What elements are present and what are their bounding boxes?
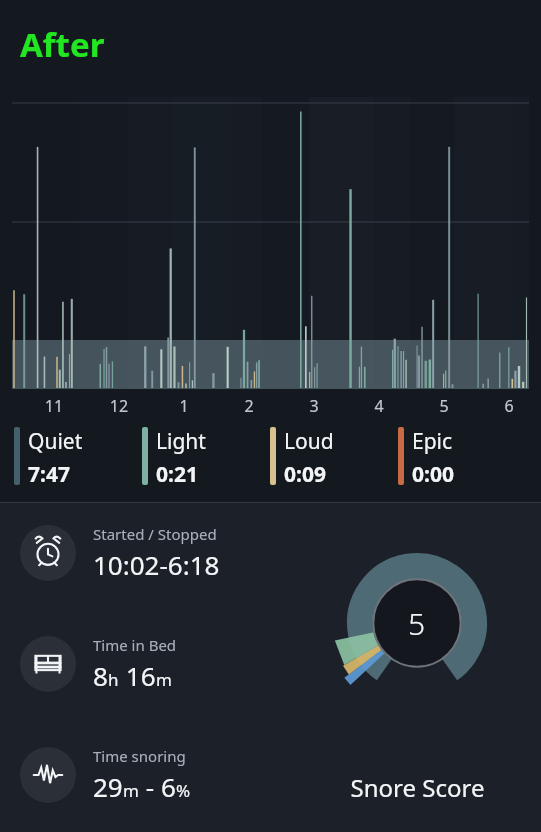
staticText: Time snoring xyxy=(93,746,186,766)
button[interactable]: Loud xyxy=(270,427,398,489)
staticText: 2 xyxy=(239,395,259,417)
staticText: m xyxy=(123,779,139,802)
staticText: Light xyxy=(156,427,206,456)
staticText: m xyxy=(156,668,172,691)
staticText: 5 xyxy=(434,395,454,417)
staticText: After xyxy=(20,22,105,67)
staticText: 0:09 xyxy=(284,460,326,489)
staticText: 3 xyxy=(304,395,324,417)
staticText: Time in Bed xyxy=(93,635,177,655)
staticText: 12 xyxy=(109,395,129,417)
staticText: Epic xyxy=(412,427,453,456)
staticText: Started / Stopped xyxy=(93,524,217,544)
staticText: 16 xyxy=(119,658,156,693)
button[interactable]: Quiet xyxy=(14,427,142,489)
button[interactable]: Light xyxy=(142,427,270,489)
staticText: - 6 xyxy=(139,769,176,804)
button[interactable]: Bed xyxy=(0,635,541,693)
staticText: 29 xyxy=(93,769,123,804)
staticText: 0:00 xyxy=(412,460,454,489)
staticText: 7:47 xyxy=(28,460,70,489)
other: Alarm xyxy=(20,525,76,581)
staticText: Loud xyxy=(284,427,334,456)
staticText: h xyxy=(108,668,119,691)
staticText: 6 xyxy=(499,395,519,417)
button[interactable]: Epic xyxy=(398,427,518,489)
staticText: 10:02-6:18 xyxy=(93,547,220,582)
staticText: Quiet xyxy=(28,427,83,456)
staticText: 5 xyxy=(408,603,426,644)
button[interactable]: Alarm xyxy=(0,524,541,582)
button[interactable]: Snore Score 5 xyxy=(347,553,487,693)
staticText: 4 xyxy=(369,395,389,417)
staticText: 11 xyxy=(44,395,64,417)
staticText: Snore Score xyxy=(330,771,505,804)
staticText: 0:21 xyxy=(156,460,198,489)
staticText: 1 xyxy=(174,395,194,417)
staticText: 8 xyxy=(93,658,108,693)
staticText: % xyxy=(176,779,191,802)
other: Snoring xyxy=(20,747,76,803)
other: Bed xyxy=(20,636,76,692)
button[interactable]: Snoring xyxy=(0,746,541,804)
